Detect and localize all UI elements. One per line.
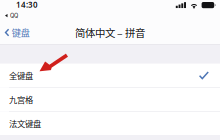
button[interactable]: 键盘: [0, 22, 30, 43]
button[interactable]: 全键盘: [0, 64, 220, 87]
staticText: 14:30: [16, 0, 38, 10]
staticText: 九宫格: [9, 93, 33, 105]
staticText: 简体中文 – 拼音: [75, 25, 145, 40]
staticText: QQ: [10, 12, 18, 19]
button[interactable]: 九宫格: [0, 88, 220, 111]
staticText: 法文键盘: [9, 117, 41, 129]
button[interactable]: 法文键盘: [0, 112, 220, 135]
staticText: 全键盘: [9, 69, 33, 81]
staticText: 键盘: [12, 26, 30, 39]
button[interactable]: QQ: [0, 0, 18, 19]
